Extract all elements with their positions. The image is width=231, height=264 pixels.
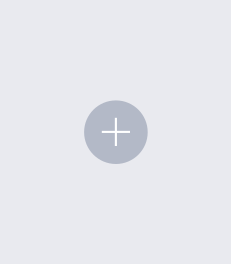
button[interactable]: Add: [84, 100, 148, 164]
